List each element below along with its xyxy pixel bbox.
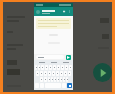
button[interactable] bbox=[68, 71, 71, 76]
button[interactable] bbox=[36, 55, 64, 59]
button[interactable]: Video call bbox=[63, 10, 66, 13]
other: Contact avatar bbox=[36, 10, 40, 14]
button[interactable] bbox=[65, 65, 68, 70]
button[interactable] bbox=[41, 65, 44, 70]
button[interactable]: Enter bbox=[67, 83, 72, 88]
button[interactable] bbox=[53, 65, 56, 70]
button[interactable] bbox=[54, 77, 56, 82]
button[interactable] bbox=[64, 71, 67, 76]
button[interactable] bbox=[40, 71, 43, 76]
button[interactable] bbox=[48, 71, 51, 76]
button[interactable] bbox=[57, 65, 60, 70]
button[interactable] bbox=[45, 65, 48, 70]
button[interactable]: More options bbox=[68, 10, 71, 13]
button[interactable] bbox=[49, 65, 52, 70]
button[interactable]: Play video bbox=[93, 63, 112, 82]
button[interactable] bbox=[63, 77, 65, 82]
button[interactable] bbox=[38, 65, 40, 70]
button[interactable] bbox=[60, 77, 62, 82]
button[interactable] bbox=[69, 65, 72, 70]
button[interactable] bbox=[36, 71, 39, 76]
button[interactable] bbox=[40, 77, 43, 82]
button[interactable] bbox=[48, 77, 50, 82]
button[interactable] bbox=[57, 77, 59, 82]
button[interactable]: Send bbox=[66, 55, 71, 60]
button[interactable] bbox=[52, 71, 55, 76]
button[interactable] bbox=[66, 77, 68, 82]
button[interactable] bbox=[35, 65, 37, 70]
button[interactable] bbox=[44, 77, 47, 82]
button[interactable] bbox=[60, 71, 63, 76]
button[interactable] bbox=[61, 65, 64, 70]
button[interactable] bbox=[56, 71, 59, 76]
button[interactable] bbox=[51, 77, 53, 82]
button[interactable] bbox=[44, 71, 47, 76]
